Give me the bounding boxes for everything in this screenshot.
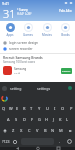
- button[interactable]: G: [36, 114, 43, 125]
- staticText: Recruit Samsung Brands: [3, 55, 43, 60]
- staticText: Y: [38, 106, 41, 111]
- button[interactable]: ?123: [0, 136, 11, 147]
- staticText: ?123: [2, 139, 10, 144]
- button[interactable]: Clipboard: [2, 86, 7, 91]
- staticText: L: [66, 117, 69, 122]
- button[interactable]: Q: [0, 103, 7, 114]
- staticText: O: [61, 106, 65, 111]
- staticText: P: [70, 106, 73, 111]
- button[interactable]: C: [25, 125, 33, 136]
- button[interactable]: Voice input: [67, 85, 73, 91]
- button[interactable]: Emoji: [11, 136, 19, 147]
- button[interactable]: R: [21, 103, 28, 114]
- staticText: Apps: [6, 33, 14, 37]
- button[interactable]: K: [57, 114, 64, 125]
- button[interactable]: D: [20, 114, 28, 125]
- staticText: E: [16, 106, 19, 111]
- button[interactable]: Recruit Samsung Brands: [3, 54, 72, 75]
- staticText: H: [45, 117, 48, 122]
- button[interactable]: screen recorder: [3, 46, 72, 52]
- button[interactable]: Z: [10, 125, 17, 136]
- button[interactable]: A: [4, 114, 12, 125]
- staticText: Samsung 100 best cases: [3, 60, 36, 64]
- button[interactable]: E: [14, 103, 21, 114]
- button[interactable]: O: [59, 103, 67, 114]
- staticText: G: [38, 117, 41, 122]
- staticText: X: [20, 128, 23, 133]
- button[interactable]: X: [17, 125, 25, 136]
- staticText: S: [15, 117, 18, 122]
- button[interactable]: B: [41, 125, 49, 136]
- button[interactable]: L: [64, 114, 71, 125]
- staticText: ° Sunny: [17, 8, 28, 12]
- staticText: Z: [12, 128, 15, 133]
- staticText: .: [59, 139, 61, 144]
- staticText: I: [54, 106, 56, 111]
- button[interactable]: Back: [13, 147, 21, 150]
- staticText: A: [7, 117, 10, 122]
- staticText: setting: [10, 86, 22, 91]
- staticText: D: [23, 117, 26, 122]
- staticText: R: [23, 106, 26, 111]
- staticText: login screen design: [9, 41, 39, 45]
- button[interactable]: .: [56, 136, 64, 147]
- button[interactable]: T: [28, 103, 35, 114]
- button[interactable]: V: [33, 125, 41, 136]
- button[interactable]: INSTALL: [61, 68, 72, 74]
- staticText: C: [28, 128, 31, 133]
- staticText: 31: [3, 6, 16, 21]
- staticText: settings: [37, 86, 51, 91]
- button[interactable]: P: [67, 103, 75, 114]
- button[interactable]: Recents: [54, 147, 62, 150]
- staticText: INSTALL: [62, 70, 71, 73]
- button[interactable]: Books: [56, 23, 74, 37]
- staticText: V: [36, 128, 39, 133]
- staticText: Games: [23, 33, 33, 37]
- button[interactable]: H: [43, 114, 50, 125]
- staticText: H:34° L:26°: [17, 12, 32, 16]
- button[interactable]: W: [7, 103, 14, 114]
- staticText: N: [51, 128, 55, 133]
- button[interactable]: F: [28, 114, 36, 125]
- staticText: Palo Alto: [59, 9, 72, 13]
- staticText: T: [30, 106, 33, 111]
- button[interactable]: I: [51, 103, 59, 114]
- staticText: B: [44, 128, 47, 133]
- button[interactable]: Shift: [0, 125, 10, 136]
- button[interactable]: Movies: [38, 23, 56, 37]
- staticText: Samsung: [14, 67, 27, 71]
- staticText: Q: [2, 106, 6, 111]
- staticText: W: [9, 106, 13, 111]
- staticText: M: [59, 128, 63, 133]
- button[interactable]: Search: [64, 136, 75, 147]
- staticText: J: [53, 117, 55, 122]
- button[interactable]: login screen design: [3, 40, 72, 46]
- staticText: Movies: [42, 33, 52, 37]
- button[interactable]: J: [50, 114, 57, 125]
- staticText: K: [59, 117, 62, 122]
- button[interactable]: M: [57, 125, 65, 136]
- button[interactable]: U: [43, 103, 51, 114]
- staticText: 4.5 ★: [14, 71, 21, 74]
- staticText: 9:41: [2, 1, 9, 6]
- button[interactable]: Games: [19, 23, 37, 37]
- staticText: Books: [61, 33, 70, 37]
- staticText: F: [31, 117, 34, 122]
- button[interactable]: Apps: [1, 23, 19, 37]
- button[interactable]: N: [49, 125, 57, 136]
- button[interactable]: Y: [35, 103, 43, 114]
- button[interactable]: Google: [2, 96, 7, 101]
- button[interactable]: S: [12, 114, 20, 125]
- button[interactable]: Backspace: [65, 125, 75, 136]
- staticText: U: [46, 106, 49, 111]
- button[interactable]: Home: [34, 147, 42, 150]
- staticText: screen recorder: [9, 47, 33, 51]
